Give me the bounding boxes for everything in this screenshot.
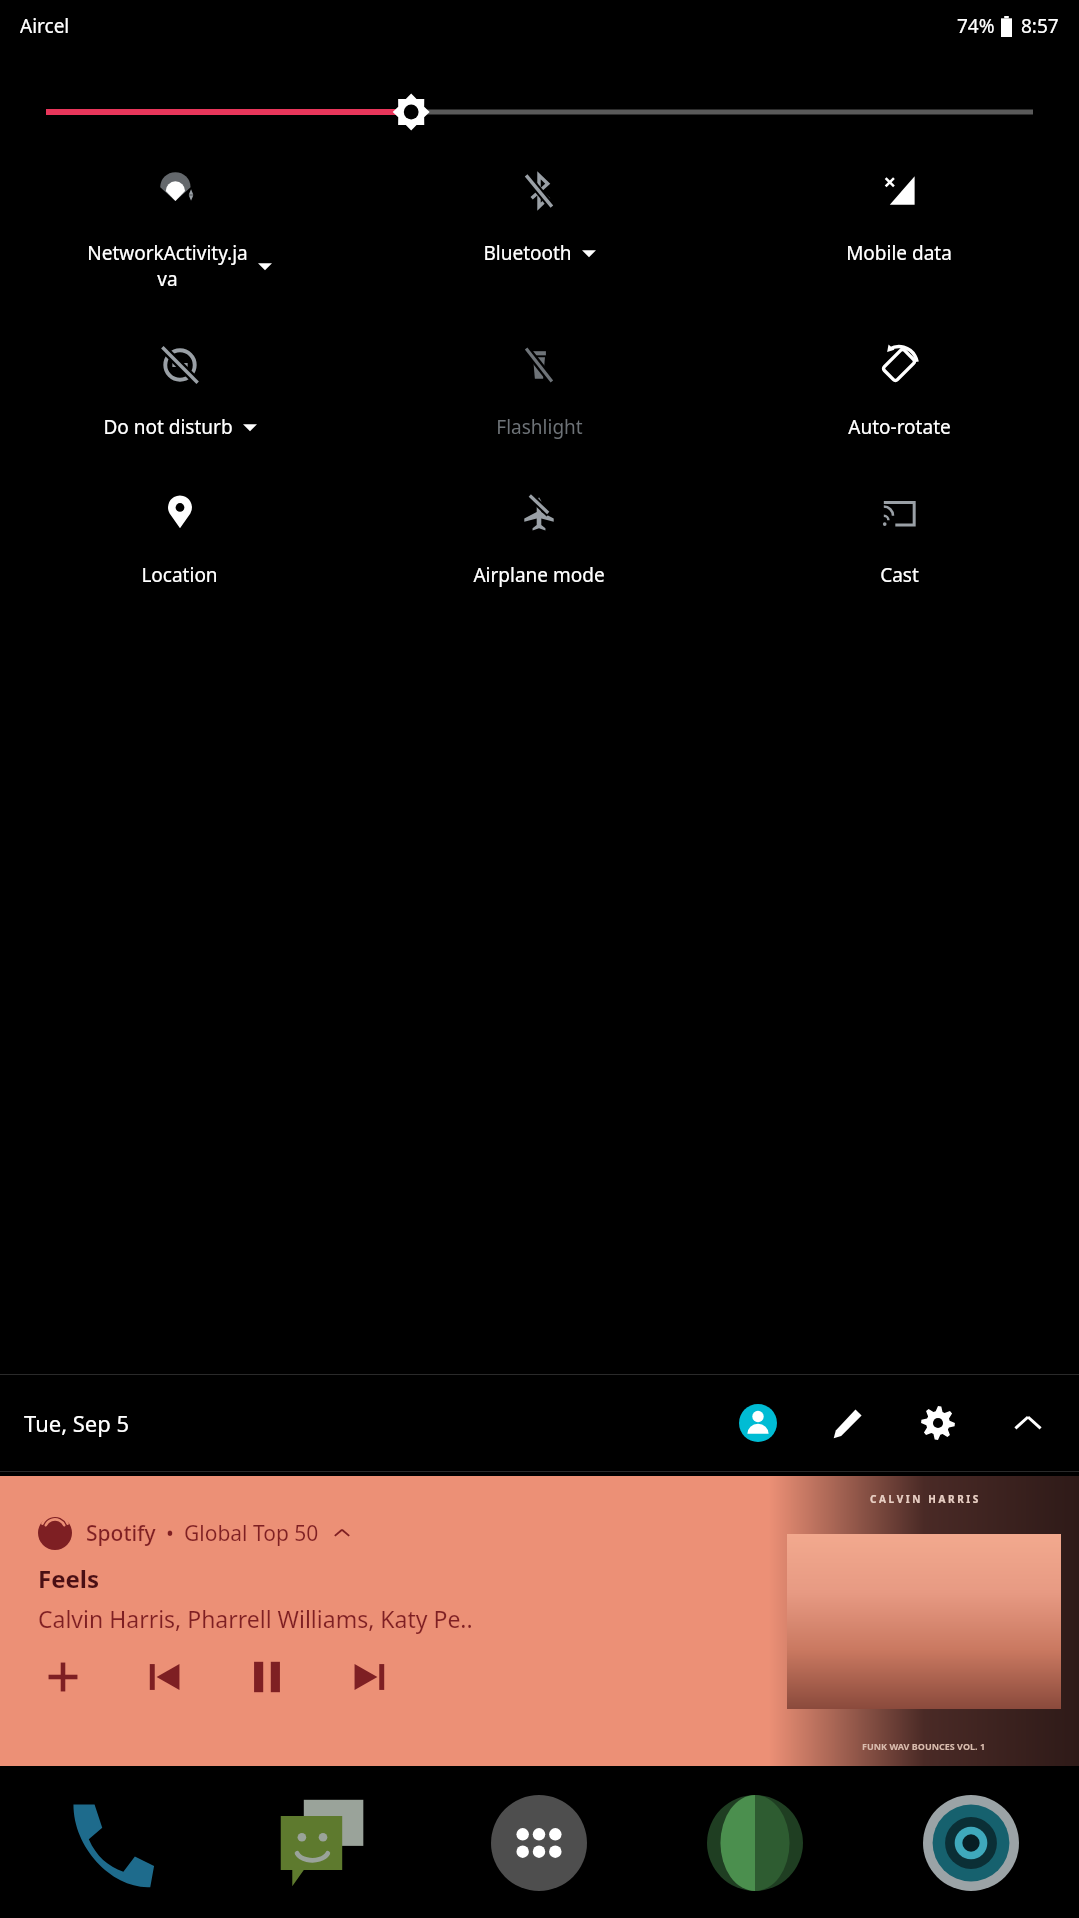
staticText: Aircel <box>20 13 70 39</box>
button[interactable]: Flashlight <box>359 338 719 444</box>
staticText: • <box>166 1519 174 1548</box>
button[interactable]: Collapse <box>1001 1396 1055 1450</box>
staticText: Mobile data <box>846 240 952 266</box>
button[interactable]: Previous <box>140 1652 190 1702</box>
button[interactable]: Auto-rotate <box>719 338 1079 444</box>
staticText: 8:57 <box>1021 13 1059 39</box>
button[interactable]: Messages <box>215 1778 431 1908</box>
staticText: Bluetooth <box>483 240 572 266</box>
staticText: Calvin Harris, Pharrell Williams, Katy P… <box>38 1603 473 1634</box>
button[interactable]: Camera <box>863 1778 1079 1908</box>
button[interactable]: Next <box>344 1652 394 1702</box>
staticText: Do not disturb <box>103 414 233 440</box>
button[interactable]: Edit <box>821 1396 875 1450</box>
staticText: Airplane mode <box>473 562 605 588</box>
staticText: FUNK WAV BOUNCES VOL. 1 <box>862 1740 986 1752</box>
button[interactable]: Location <box>0 486 359 592</box>
button[interactable]: User <box>731 1396 785 1450</box>
button[interactable]: Brightness <box>0 90 1079 134</box>
staticText: Location <box>141 562 218 588</box>
button[interactable]: C A L V I N H A R R I S <box>0 1476 1079 1766</box>
button[interactable]: Phone <box>0 1778 215 1908</box>
button[interactable]: Bluetooth <box>359 164 719 270</box>
staticText: Global Top 50 <box>184 1519 319 1548</box>
staticText: NetworkActivity.ja va <box>87 240 248 292</box>
staticText: Spotify <box>86 1519 156 1548</box>
button[interactable]: Do not disturb <box>0 338 359 444</box>
button[interactable]: Pause <box>242 1652 292 1702</box>
staticText: Feels <box>38 1562 100 1595</box>
staticText: Tue, Sep 5 <box>24 1408 130 1438</box>
button[interactable]: Mobile data <box>719 164 1079 270</box>
staticText: Cast <box>880 562 919 588</box>
button[interactable]: All apps <box>431 1778 647 1908</box>
button[interactable]: Expand <box>331 1522 353 1544</box>
button[interactable]: Cast <box>719 486 1079 592</box>
staticText: C A L V I N H A R R I S <box>870 1492 979 1506</box>
staticText: Auto-rotate <box>848 414 951 440</box>
button[interactable]: Add <box>38 1652 88 1702</box>
staticText: Flashlight <box>496 414 583 440</box>
button[interactable]: Settings <box>911 1396 965 1450</box>
button[interactable]: NetworkActivity.ja va <box>0 164 359 296</box>
button[interactable]: Browser <box>647 1778 863 1908</box>
staticText: 74% <box>957 13 995 39</box>
button[interactable]: Airplane mode <box>359 486 719 592</box>
